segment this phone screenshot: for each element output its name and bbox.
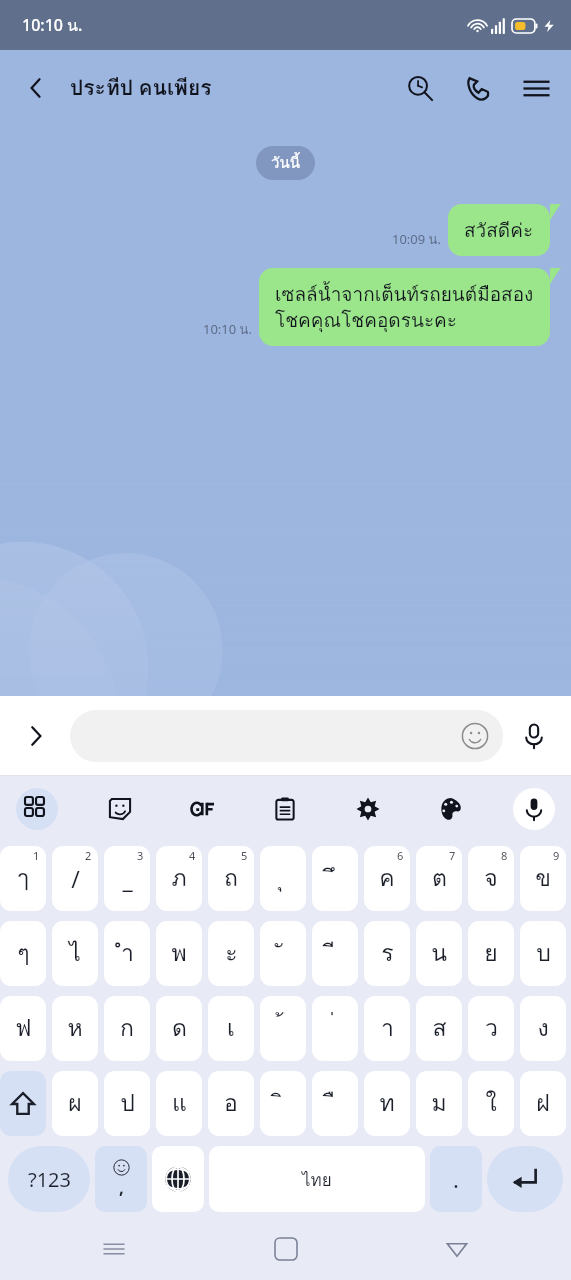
button[interactable]: Shift — [0, 1071, 46, 1136]
button[interactable]: Recents — [90, 1225, 138, 1273]
staticText: แ — [172, 1085, 187, 1122]
button[interactable]: 6 — [364, 846, 410, 911]
button[interactable]: ้ — [260, 996, 306, 1061]
staticText: ไ — [69, 935, 81, 972]
button[interactable]: น — [416, 921, 462, 986]
button[interactable]: Stickers — [99, 788, 141, 830]
button[interactable]: 3 — [104, 846, 150, 911]
staticText: 10:10 น. — [203, 319, 252, 340]
button[interactable]: สวัสดีค่ะ — [448, 204, 550, 256]
button[interactable]: ผ — [52, 1071, 98, 1136]
button[interactable]: ใ — [468, 1071, 514, 1136]
button[interactable]: บ — [520, 921, 566, 986]
button[interactable]: ม — [416, 1071, 462, 1136]
button[interactable]: ื — [312, 1071, 358, 1136]
button[interactable]: Enter — [487, 1146, 563, 1212]
staticText: 6 — [397, 848, 404, 863]
button[interactable]: ี — [312, 921, 358, 986]
button[interactable]: GIF — [182, 788, 224, 830]
staticText: ำ — [121, 935, 134, 972]
button[interactable]: . — [430, 1146, 482, 1212]
staticText: ค — [379, 860, 395, 897]
button[interactable]: เซลล์น้ำจากเต็นท์รถยนต์มือสอง โชคคุณโชคอ… — [259, 268, 550, 346]
button[interactable]: Search — [399, 67, 441, 109]
staticText: ฟ — [15, 1010, 32, 1047]
button[interactable]: 8 — [468, 846, 514, 911]
button[interactable]: ?123 — [8, 1146, 90, 1212]
staticText: . — [453, 1164, 459, 1194]
button[interactable]: ะ — [208, 921, 254, 986]
button[interactable]: ั — [260, 921, 306, 986]
button[interactable]: Call — [457, 67, 499, 109]
button[interactable]: Clipboard — [264, 788, 306, 830]
button[interactable]: Voice input — [513, 788, 555, 830]
button[interactable]: อ — [208, 1071, 254, 1136]
staticText: ๅ — [17, 860, 29, 897]
button[interactable]: ไทย — [209, 1146, 425, 1212]
button[interactable]: ฟ — [0, 996, 46, 1061]
button[interactable]: แ — [156, 1071, 202, 1136]
button[interactable]: ร — [364, 921, 410, 986]
button[interactable]: ประทีป คนเพียร — [70, 71, 212, 104]
staticText: น — [431, 935, 447, 972]
button[interactable]: Home — [262, 1225, 310, 1273]
staticText: ส — [432, 1010, 447, 1047]
button[interactable]: Apps — [16, 788, 58, 830]
button[interactable]: Settings — [347, 788, 389, 830]
button[interactable]: ท — [364, 1071, 410, 1136]
staticText: ฝ — [536, 1085, 550, 1122]
button[interactable]: ึ — [312, 846, 358, 911]
staticText: ด — [172, 1010, 187, 1047]
button[interactable]: ด — [156, 996, 202, 1061]
staticText: ภ — [171, 860, 187, 897]
staticText: ผ — [68, 1085, 82, 1122]
staticText: ก — [120, 1010, 134, 1047]
staticText: ว — [485, 1010, 498, 1047]
button[interactable]: 1 — [0, 846, 46, 911]
button[interactable]: Change language — [152, 1146, 204, 1212]
button[interactable]: Back — [16, 68, 56, 108]
button[interactable]: Emoji and comma — [95, 1146, 147, 1212]
button[interactable]: Expand — [14, 714, 58, 758]
staticText: ะ — [225, 935, 238, 972]
button[interactable]: ง — [520, 996, 566, 1061]
button[interactable]: Menu — [515, 67, 557, 109]
button[interactable]: ำ — [104, 921, 150, 986]
staticText: ง — [537, 1010, 549, 1047]
button[interactable]: 9 — [520, 846, 566, 911]
staticText: ใ — [485, 1085, 497, 1122]
staticText: ?123 — [28, 1166, 71, 1193]
button[interactable]: ป — [104, 1071, 150, 1136]
button[interactable]: Emoji — [460, 721, 490, 751]
button[interactable]: Back — [433, 1225, 481, 1273]
button[interactable]: ส — [416, 996, 462, 1061]
button[interactable]: ่ — [312, 996, 358, 1061]
button[interactable]: พ — [156, 921, 202, 986]
button[interactable]: 4 — [156, 846, 202, 911]
button[interactable]: ุ — [260, 846, 306, 911]
staticText: , — [119, 1176, 124, 1199]
button[interactable]: า — [364, 996, 410, 1061]
staticText: _ — [122, 863, 133, 894]
button[interactable]: 2 — [52, 846, 98, 911]
button[interactable]: วันนี้ — [271, 151, 300, 175]
button[interactable]: Emoji — [70, 710, 503, 762]
button[interactable]: 5 — [208, 846, 254, 911]
button[interactable]: ิ — [260, 1071, 306, 1136]
button[interactable]: ห — [52, 996, 98, 1061]
staticText: 2 — [85, 848, 92, 863]
button[interactable]: ย — [468, 921, 514, 986]
button[interactable]: ไ — [52, 921, 98, 986]
button[interactable]: ก — [104, 996, 150, 1061]
button[interactable]: 7 — [416, 846, 462, 911]
staticText: ป — [120, 1085, 135, 1122]
button[interactable]: ว — [468, 996, 514, 1061]
button[interactable]: เ — [208, 996, 254, 1061]
button[interactable]: ฝ — [520, 1071, 566, 1136]
button[interactable]: Voice message — [511, 713, 557, 759]
staticText: เ — [227, 1010, 235, 1047]
button[interactable]: ๆ — [0, 921, 46, 986]
staticText: ๆ — [17, 935, 30, 972]
button[interactable]: Themes — [430, 788, 472, 830]
staticText: ท — [379, 1085, 395, 1122]
